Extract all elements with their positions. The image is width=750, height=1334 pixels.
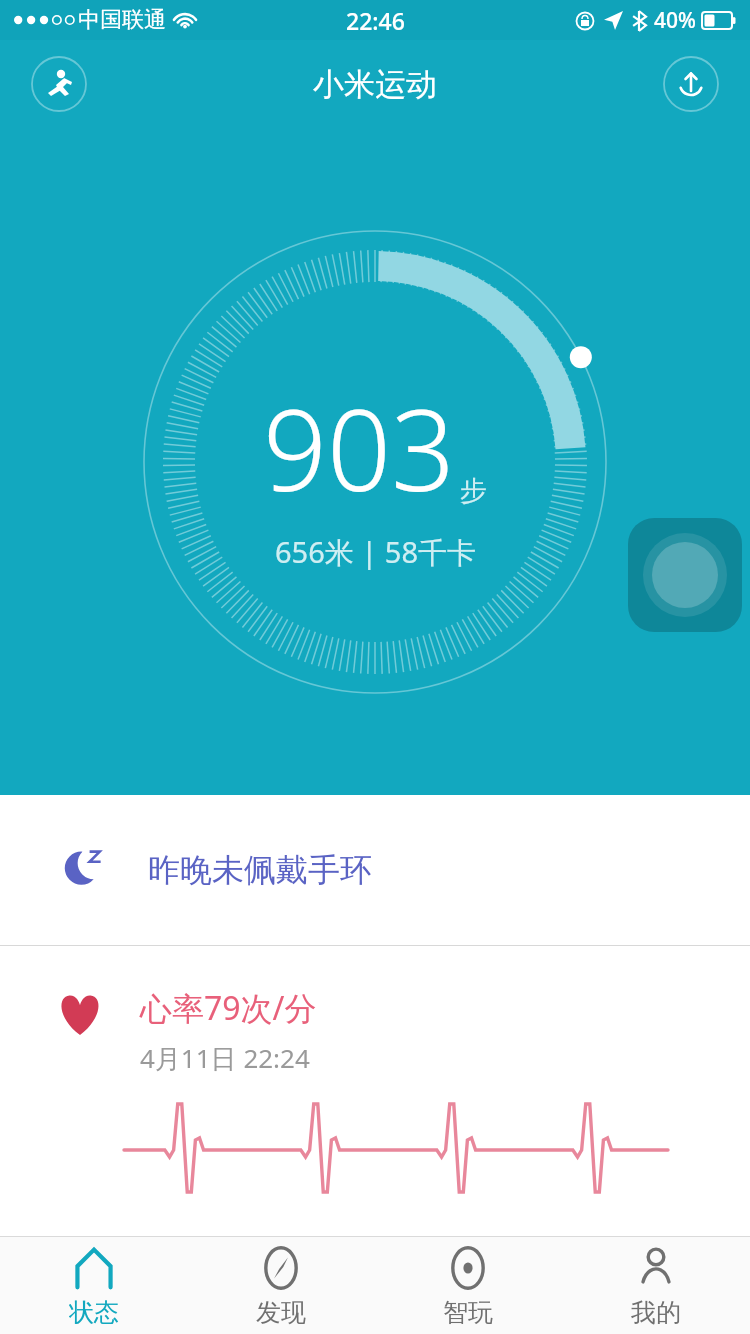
staticText: 昨晚未佩戴手环	[148, 850, 372, 890]
staticText: 我的	[631, 1297, 681, 1326]
staticText: 智玩	[443, 1297, 493, 1326]
button[interactable]: Workout	[26, 51, 92, 117]
staticText: 中国联通	[78, 6, 166, 34]
button[interactable]: 我的	[562, 1237, 750, 1334]
staticText: 小米运动	[313, 65, 437, 104]
staticText: 903	[263, 371, 455, 524]
button[interactable]: Share	[658, 51, 724, 117]
staticText: 656米 | 58千卡	[275, 532, 476, 572]
button[interactable]: 发现	[187, 1237, 374, 1334]
staticText: 心率79次/分	[140, 986, 317, 1030]
staticText: 步	[460, 474, 487, 508]
staticText: 40%	[654, 6, 696, 35]
button[interactable]: 昨晚未佩戴手环	[0, 795, 750, 945]
button[interactable]: 智玩	[374, 1237, 562, 1334]
staticText: 4月11日 22:24	[140, 1040, 310, 1076]
staticText: 状态	[69, 1297, 119, 1326]
button[interactable]: 状态	[0, 1237, 187, 1334]
staticText: 发现	[256, 1297, 306, 1326]
button[interactable]: AssistiveTouch	[628, 518, 742, 632]
button[interactable]: 心率79次/分	[0, 946, 750, 1228]
staticText: 22:46	[346, 5, 405, 36]
